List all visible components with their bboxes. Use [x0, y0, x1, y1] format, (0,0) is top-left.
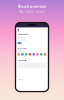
button[interactable]: Service 1 [17, 53, 20, 56]
staticText: Choose a date [17, 34, 28, 35]
button[interactable] [17, 42, 21, 44]
staticText: Continue [17, 79, 23, 80]
button[interactable]: Service 2 [21, 53, 24, 56]
button[interactable]: Service 6 [36, 53, 39, 56]
staticText: Your details [17, 60, 26, 61]
staticText: tap to add [17, 50, 23, 52]
button[interactable]: Service 4 [29, 53, 31, 56]
staticText: fast, simple, secure [19, 10, 45, 13]
staticText: Book a service [18, 3, 46, 9]
button[interactable]: Back [17, 29, 20, 31]
button[interactable]: Service 7 [40, 53, 42, 56]
staticText: Pick services [17, 48, 27, 50]
button[interactable]: Service 5 [32, 53, 35, 56]
button[interactable]: Service 8 [44, 53, 46, 56]
button[interactable]: Service 3 [25, 53, 27, 56]
